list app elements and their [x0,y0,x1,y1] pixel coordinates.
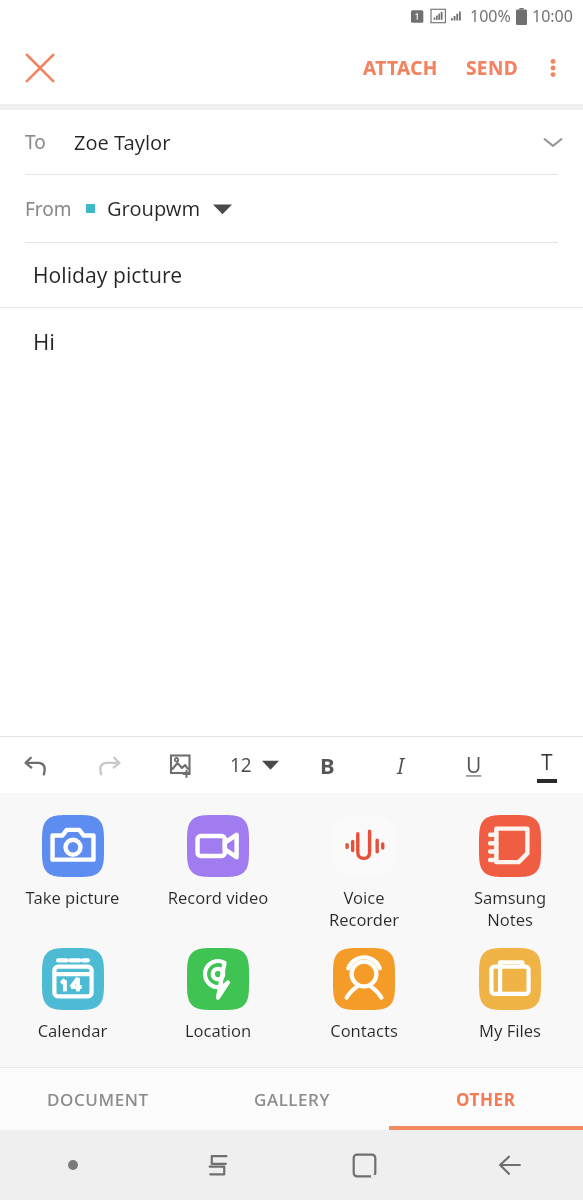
button[interactable]: To [0,110,583,174]
button[interactable]: Back [437,1130,583,1200]
staticText: SEND [466,55,519,81]
button[interactable]: Record video [145,815,291,908]
button[interactable]: Recents [145,1130,291,1200]
button[interactable]: Text color [510,737,583,793]
button[interactable]: SEND [456,43,529,93]
staticText: GALLERY [254,1088,330,1111]
staticText: Holiday picture [33,261,183,290]
staticText: Contacts [291,1019,437,1041]
button[interactable]: Take picture [0,815,145,908]
button[interactable]: Voice Recorder [291,815,437,930]
staticText: My Files [437,1019,583,1041]
button[interactable]: From [0,175,583,242]
button[interactable]: Close [14,42,66,94]
button[interactable]: Holiday picture [0,243,583,307]
button[interactable]: More options [529,44,577,92]
staticText: DOCUMENT [47,1088,149,1111]
button[interactable]: Contacts [291,948,437,1041]
staticText: I [397,750,405,780]
staticText: T [541,748,553,777]
staticText: ATTACH [363,55,438,81]
button[interactable]: Insert image [145,737,218,793]
staticText: Samsung Notes [437,886,583,930]
button[interactable]: Redo [72,737,145,793]
button[interactable]: OTHER [389,1068,583,1130]
staticText: Groupwm [107,195,201,222]
staticText: 12 [230,752,252,778]
staticText: 100% [470,5,511,27]
button[interactable]: U [437,737,510,793]
staticText: From [25,196,72,222]
staticText: Record video [145,886,291,908]
staticText: Voice Recorder [291,886,437,930]
button[interactable]: I [364,737,437,793]
button[interactable]: My Files [437,948,583,1041]
button[interactable]: Assistant [0,1130,145,1200]
button[interactable]: ATTACH [353,43,448,93]
button[interactable]: Undo [0,737,72,793]
staticText: OTHER [456,1088,516,1111]
staticText: Hi [33,326,55,356]
other: Expand recipients [541,130,565,154]
staticText: Take picture [0,886,145,908]
button[interactable]: DOCUMENT [0,1068,195,1130]
staticText: Location [145,1019,291,1041]
button[interactable]: Calendar [0,948,145,1041]
staticText: 10:00 [532,5,573,27]
button[interactable]: GALLERY [195,1068,389,1130]
staticText: To [25,129,46,155]
staticText: B [320,750,335,780]
staticText: Calendar [0,1019,145,1041]
button[interactable]: Hi [0,308,583,736]
button[interactable]: Home [291,1130,437,1200]
staticText: U [466,751,482,780]
button[interactable]: Location [145,948,291,1041]
button[interactable]: 12 [218,737,291,793]
button[interactable]: B [291,737,364,793]
button[interactable]: Samsung Notes [437,815,583,930]
staticText: Zoe Taylor [74,129,171,156]
